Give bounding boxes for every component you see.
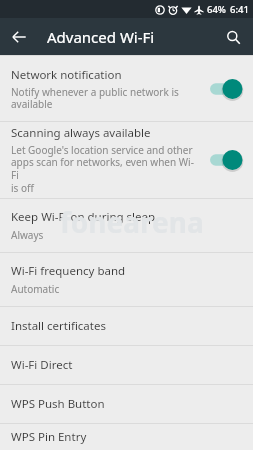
button[interactable]: Scanning always available <box>0 122 253 198</box>
staticText: Let Google's location service and other … <box>11 143 199 195</box>
staticText: Always <box>11 228 44 242</box>
staticText: 64% <box>207 3 226 16</box>
button[interactable]: Toggle <box>205 147 245 173</box>
button[interactable]: Install certificates <box>0 307 253 345</box>
staticText: 6:41 <box>230 3 249 16</box>
button[interactable]: Toggle <box>205 76 245 102</box>
button[interactable]: WPS Pin Entry <box>0 424 253 450</box>
button[interactable]: Wi-Fi frequency band <box>0 253 253 306</box>
button[interactable]: Search <box>219 20 248 54</box>
staticText: Network notification <box>11 67 122 83</box>
button[interactable]: Back <box>4 20 34 54</box>
button[interactable]: Network notification <box>0 56 253 121</box>
button[interactable]: Wi-Fi Direct <box>0 346 253 384</box>
staticText: fonearena <box>60 203 204 241</box>
staticText: Advanced Wi-Fi <box>47 27 155 47</box>
staticText: WPS Pin Entry <box>11 429 87 445</box>
staticText: Keep Wi-Fi on during sleep <box>11 209 156 225</box>
button[interactable]: Keep Wi-Fi on during sleep <box>0 199 253 252</box>
staticText: WPS Push Button <box>11 396 105 412</box>
staticText: Notify whenever a public network is avai… <box>11 85 179 111</box>
staticText: Scanning always available <box>11 125 151 141</box>
button[interactable]: WPS Push Button <box>0 385 253 423</box>
staticText: Install certificates <box>11 318 106 334</box>
staticText: Wi-Fi Direct <box>11 357 73 373</box>
staticText: Automatic <box>11 282 60 296</box>
staticText: Wi-Fi frequency band <box>11 263 126 279</box>
